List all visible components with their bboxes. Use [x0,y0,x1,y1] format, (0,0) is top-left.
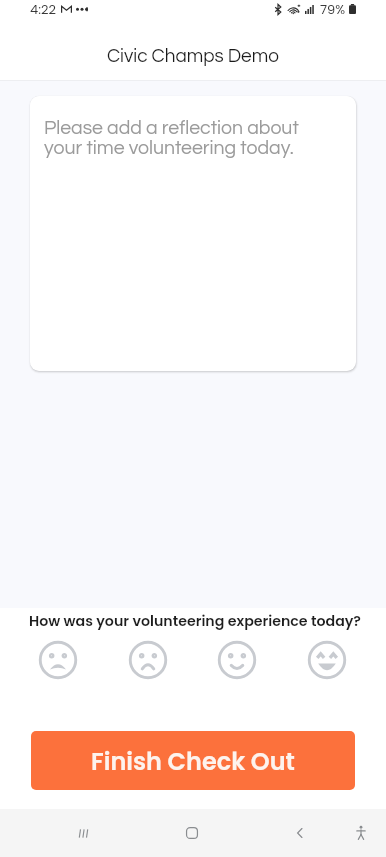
staticText: Finish Check Out [91,745,295,779]
button[interactable]: Rating 1 [38,640,78,680]
staticText: Please add a reflection about your time … [44,118,301,158]
button[interactable]: Rating 4 [307,640,347,680]
button[interactable]: Accessibility [336,809,386,857]
staticText: How was your volunteering experience tod… [29,611,361,631]
staticText: 4:22 [30,0,56,18]
button[interactable]: Please add a reflection about your time … [30,96,356,371]
staticText: 79% [320,0,346,18]
button[interactable]: Home [138,809,246,857]
button[interactable]: Recents [29,809,138,857]
button[interactable]: Rating 2 [128,640,168,680]
staticText: Civic Champs Demo [107,46,279,66]
button[interactable]: Rating 3 [217,640,257,680]
button[interactable]: Back [246,809,354,857]
button[interactable]: Finish Check Out [31,731,355,790]
